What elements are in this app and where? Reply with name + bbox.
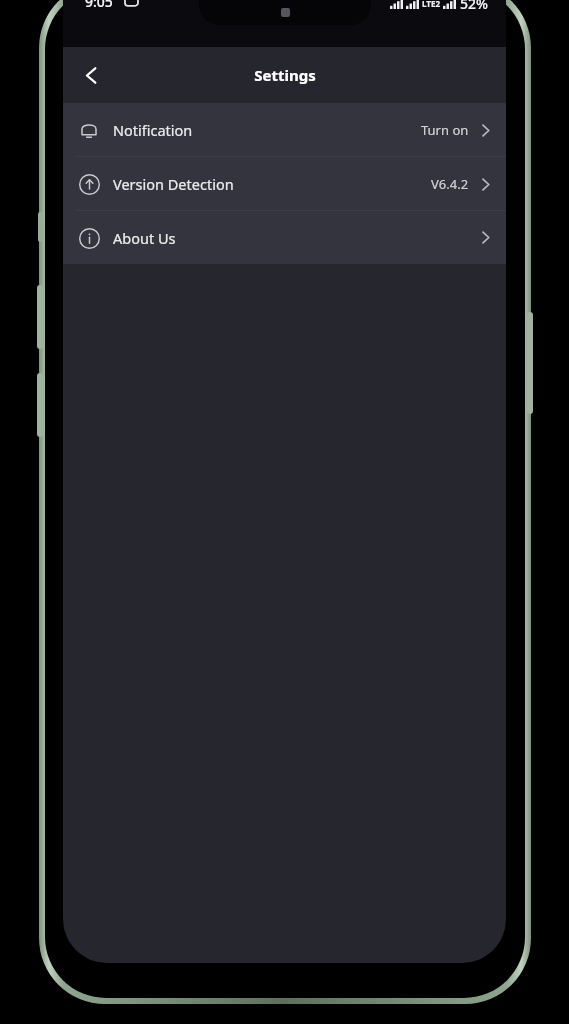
staticText: 52%: [460, 0, 488, 13]
staticText: V6.4.2: [431, 175, 469, 193]
staticText: Settings: [254, 65, 316, 85]
button[interactable]: Version Detection: [63, 157, 506, 211]
staticText: 9:05: [85, 0, 113, 11]
button[interactable]: Notification: [63, 103, 506, 157]
button[interactable]: Back: [69, 47, 113, 103]
staticText: Version Detection: [113, 174, 431, 194]
staticText: About Us: [113, 228, 478, 248]
staticText: Notification: [113, 120, 421, 140]
button[interactable]: About Us: [63, 211, 506, 264]
staticText: Turn on: [421, 121, 469, 139]
staticText: LTE2: [422, 0, 440, 9]
